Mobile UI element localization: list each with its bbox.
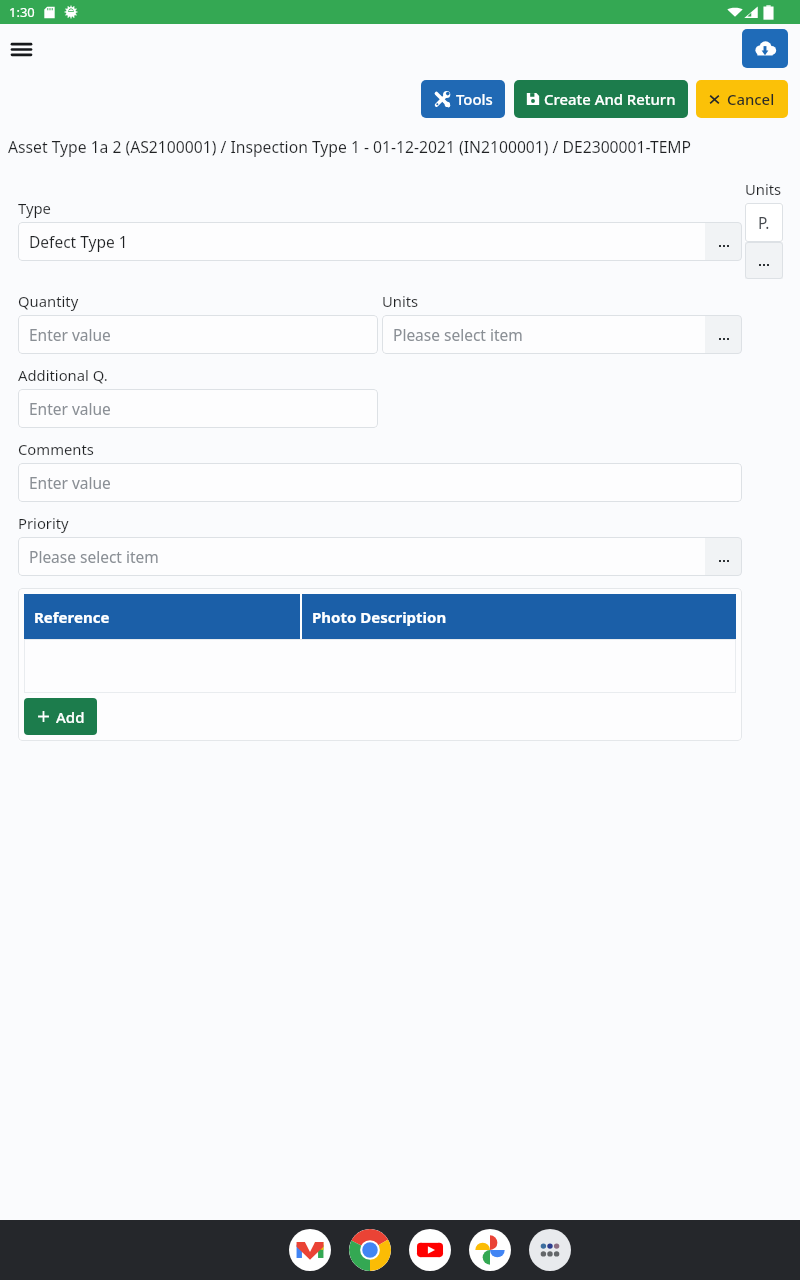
button[interactable]: Defect Type 1 [18, 222, 742, 261]
button[interactable]: Create And Return [514, 80, 688, 118]
button[interactable]: Cancel [696, 80, 788, 118]
button[interactable]: Please select item [382, 315, 742, 354]
staticText: Type [18, 198, 51, 218]
staticText: Asset Type 1a 2 (AS2100001) / Inspection… [8, 136, 692, 157]
button[interactable]: P. [745, 203, 783, 242]
staticText: Units [382, 291, 419, 311]
button[interactable]: Add [24, 698, 97, 735]
staticText: P. [758, 212, 770, 233]
staticText: Additional Q. [18, 365, 108, 385]
button[interactable]: Download [742, 29, 788, 68]
staticText: Reference [34, 607, 110, 627]
staticText: Please select item [29, 546, 159, 567]
button[interactable]: Gmail [289, 1229, 331, 1271]
staticText: Priority [18, 513, 69, 533]
staticText: 1:30 [9, 3, 35, 21]
button[interactable]: Please select item [18, 537, 742, 576]
button[interactable]: Menu [3, 31, 39, 67]
staticText: Defect Type 1 [29, 231, 128, 252]
staticText: Photo Description [312, 607, 447, 627]
button[interactable]: Chrome [349, 1229, 391, 1271]
button[interactable]: Enter value [18, 315, 378, 354]
staticText: Add [56, 707, 85, 727]
staticText: Enter value [29, 398, 111, 419]
button[interactable]: All apps [529, 1229, 571, 1271]
button[interactable]: More units [745, 242, 783, 279]
button[interactable]: Enter value [18, 389, 378, 428]
button[interactable]: Tools [421, 80, 505, 118]
staticText: Comments [18, 439, 94, 459]
staticText: Quantity [18, 291, 79, 311]
staticText: Enter value [29, 324, 111, 345]
staticText: Create And Return [544, 89, 676, 109]
staticText: Cancel [727, 89, 775, 109]
staticText: Please select item [393, 324, 523, 345]
button[interactable]: Photos [469, 1229, 511, 1271]
staticText: Units [745, 179, 782, 199]
button[interactable]: YouTube [409, 1229, 451, 1271]
staticText: Enter value [29, 472, 111, 493]
button[interactable]: Enter value [18, 463, 742, 502]
staticText: Tools [456, 89, 493, 109]
